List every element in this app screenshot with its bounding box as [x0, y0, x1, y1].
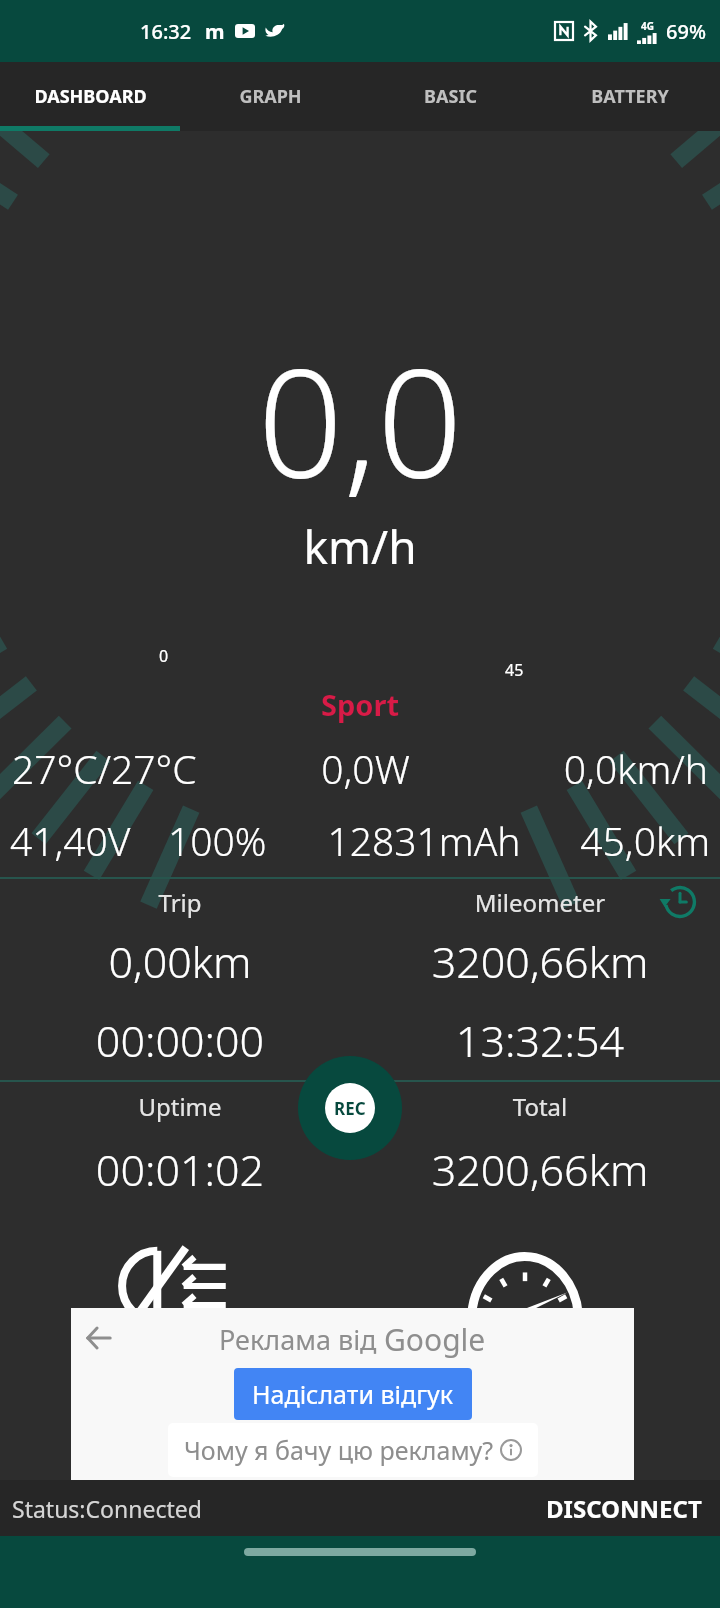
staticText: DASHBOARD: [34, 84, 147, 109]
staticText: 0,00km: [0, 932, 360, 991]
staticText: 3200,66km: [360, 932, 720, 991]
button[interactable]: BATTERY: [540, 62, 720, 131]
staticText: BATTERY: [591, 84, 669, 109]
staticText: Status:Connected: [12, 1493, 202, 1524]
staticText: Uptime: [0, 1090, 360, 1123]
staticText: m: [205, 18, 225, 45]
button[interactable]: Back: [83, 1322, 115, 1354]
staticText: 100%: [168, 814, 305, 867]
staticText: 69%: [666, 18, 706, 45]
staticText: BASIC: [424, 84, 477, 109]
staticText: 45,0km: [543, 814, 710, 867]
staticText: Sport: [0, 685, 720, 724]
staticText: 13:32:54: [360, 1011, 720, 1070]
button[interactable]: History: [662, 884, 698, 920]
staticText: 0,0km/h: [468, 742, 708, 795]
staticText: 0,0: [0, 318, 720, 522]
button[interactable]: DASHBOARD: [0, 62, 180, 131]
staticText: Trip: [0, 886, 360, 919]
staticText: km/h: [0, 515, 720, 578]
staticText: GRAPH: [239, 84, 302, 109]
staticText: 41,40V: [10, 814, 168, 867]
staticText: 4G: [641, 19, 654, 33]
staticText: 00:00:00: [0, 1011, 360, 1070]
staticText: Mileometer: [360, 886, 720, 919]
staticText: Google: [384, 1319, 486, 1360]
staticText: Чому я бачу цю рекламу?: [184, 1433, 500, 1467]
staticText: 3200,66km: [360, 1140, 720, 1199]
staticText: 12831mAh: [305, 814, 543, 867]
staticText: 0,0W: [263, 742, 468, 795]
staticText: 45: [505, 659, 524, 681]
button[interactable]: Record: [298, 1056, 402, 1160]
staticText: 0: [159, 645, 169, 667]
button[interactable]: Чому я бачу цю рекламу?: [168, 1423, 538, 1477]
button[interactable]: Надіслати відгук: [234, 1368, 472, 1420]
button[interactable]: Headlight off: [119, 1238, 231, 1334]
staticText: 27°C/27°C: [12, 742, 263, 795]
staticText: REC: [334, 1097, 366, 1120]
staticText: 00:01:02: [0, 1140, 360, 1199]
staticText: 16:32: [140, 18, 192, 45]
staticText: DISCONNECT: [546, 1492, 702, 1525]
button[interactable]: Speed limit: [467, 1238, 583, 1334]
button[interactable]: BASIC: [360, 62, 540, 131]
button[interactable]: DISCONNECT: [546, 1492, 720, 1525]
staticText: Total: [360, 1090, 720, 1123]
staticText: Реклама від: [219, 1321, 384, 1358]
staticText: Надіслати відгук: [252, 1377, 454, 1411]
button[interactable]: GRAPH: [180, 62, 360, 131]
